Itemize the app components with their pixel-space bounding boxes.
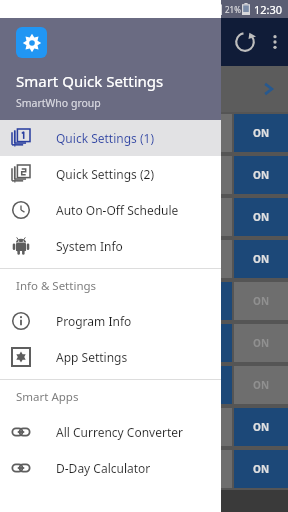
button[interactable]: ON bbox=[234, 198, 288, 236]
staticText: ON bbox=[253, 126, 270, 140]
staticText: Quick Settings (2) bbox=[56, 166, 155, 182]
button[interactable]: ON bbox=[234, 450, 288, 488]
staticText: ON bbox=[253, 462, 270, 476]
staticText: ON bbox=[253, 420, 270, 434]
staticText: ON bbox=[253, 210, 270, 224]
button[interactable]: App Settings bbox=[0, 339, 221, 375]
button[interactable]: System Info bbox=[0, 228, 221, 264]
staticText: OFF bbox=[196, 378, 215, 392]
button[interactable]: ON bbox=[234, 282, 288, 320]
button[interactable]: ON bbox=[234, 240, 288, 278]
button[interactable]: ON bbox=[234, 366, 288, 404]
button[interactable]: OFF bbox=[178, 366, 232, 404]
staticText: Auto On-Off Schedule bbox=[56, 202, 179, 218]
staticText: ON bbox=[253, 168, 270, 182]
button[interactable]: OFF bbox=[178, 156, 232, 194]
staticText: System Info bbox=[56, 238, 123, 254]
staticText: 21% bbox=[225, 4, 241, 15]
button[interactable]: All Currency Converter bbox=[0, 414, 221, 450]
button[interactable]: ON bbox=[234, 408, 288, 446]
button[interactable]: OFF bbox=[178, 198, 232, 236]
button[interactable]: ON bbox=[234, 156, 288, 194]
button[interactable]: D-Day Calculator bbox=[0, 450, 221, 486]
button[interactable]: Refresh bbox=[234, 31, 256, 53]
staticText: ON bbox=[253, 252, 270, 266]
staticText: All Currency Converter bbox=[56, 424, 183, 440]
staticText: Program Info bbox=[56, 313, 132, 329]
button[interactable]: OFF bbox=[178, 282, 232, 320]
button[interactable]: OFF bbox=[178, 450, 232, 488]
staticText: Info & Settings bbox=[16, 278, 97, 294]
button[interactable]: ON bbox=[234, 114, 288, 152]
button[interactable]: Program Info bbox=[0, 303, 221, 339]
button[interactable]: Auto On-Off Schedule bbox=[0, 192, 221, 228]
button[interactable]: Quick Settings (1) bbox=[0, 120, 221, 156]
staticText: App Settings bbox=[56, 349, 128, 365]
staticText: ON bbox=[253, 294, 270, 308]
staticText: 12:30 bbox=[254, 2, 283, 17]
button[interactable]: OFF bbox=[178, 240, 232, 278]
button[interactable]: OFF bbox=[178, 114, 232, 152]
staticText: D-Day Calculator bbox=[56, 460, 151, 476]
staticText: Smart Apps bbox=[16, 389, 79, 405]
button[interactable]: OFF bbox=[178, 324, 232, 362]
staticText: ON bbox=[253, 378, 270, 392]
staticText: SmartWho group bbox=[16, 96, 101, 110]
button[interactable]: ON bbox=[234, 324, 288, 362]
staticText: ON bbox=[253, 336, 270, 350]
staticText: Smart Quick Settings bbox=[16, 71, 164, 91]
button[interactable]: Quick Settings (2) bbox=[0, 156, 221, 192]
button[interactable]: OFF bbox=[178, 408, 232, 446]
button[interactable]: More options bbox=[264, 31, 286, 53]
staticText: Quick Settings (1) bbox=[56, 130, 155, 146]
